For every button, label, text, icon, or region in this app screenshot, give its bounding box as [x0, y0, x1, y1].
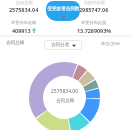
staticText: 合同总额	[16, 0, 33, 5]
staticText: 单位(万元)	[101, 41, 121, 47]
staticText: 2985747.06	[79, 6, 109, 13]
staticText: 2575834.00	[51, 88, 79, 95]
staticText: 合同总额	[56, 98, 75, 104]
staticText: 409913	[12, 27, 31, 34]
staticText: 13.7289093%	[77, 27, 112, 34]
staticText: 合同分类	[51, 42, 70, 48]
staticText: 实际结算额	[84, 0, 105, 5]
staticText: 变更补充比例	[81, 20, 107, 25]
button[interactable]: 合同分类	[44, 40, 82, 50]
button[interactable]: 合同总额	[6, 40, 25, 46]
staticText: 2575834.04	[9, 6, 39, 13]
staticText: 变更补充金额	[11, 20, 37, 25]
button[interactable]: 变更签署合同数	[46, 1, 80, 21]
staticText: 变更签署合同数	[47, 6, 80, 12]
staticText: 2	[62, 14, 65, 21]
